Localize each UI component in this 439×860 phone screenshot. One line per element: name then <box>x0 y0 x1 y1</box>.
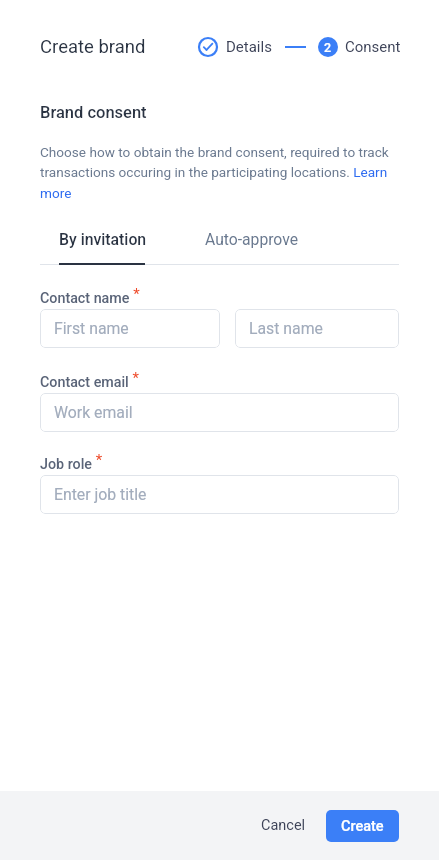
staticText: Auto-approve <box>205 230 299 248</box>
button[interactable]: Last name <box>235 309 399 348</box>
staticText: 2 <box>324 40 332 55</box>
staticText: By invitation <box>59 230 147 249</box>
button[interactable]: Cancel <box>251 809 316 842</box>
button[interactable]: First name <box>40 309 220 348</box>
staticText: Consent <box>345 38 401 56</box>
staticText: Work email <box>54 403 133 422</box>
button[interactable]: By invitation <box>40 222 166 265</box>
staticText: Contact email * <box>40 369 139 391</box>
staticText: First name <box>54 319 129 338</box>
staticText: Create brand <box>40 36 146 58</box>
button[interactable]: Create <box>326 810 399 842</box>
staticText: Contact name * <box>40 285 140 307</box>
staticText: Cancel <box>261 817 306 834</box>
staticText: Job role * <box>40 451 103 473</box>
staticText: Choose how to obtain the brand consent, … <box>40 144 399 202</box>
button[interactable]: Enter job title <box>40 475 399 514</box>
staticText: Details <box>226 38 272 56</box>
button[interactable]: Details step completed <box>198 37 218 57</box>
staticText: Last name <box>249 319 323 338</box>
staticText: Brand consent <box>40 103 147 122</box>
staticText: Enter job title <box>54 485 147 504</box>
button[interactable]: Auto-approve <box>186 222 318 265</box>
button[interactable]: Work email <box>40 393 399 432</box>
button[interactable]: Consent step 2 <box>318 37 338 57</box>
staticText: Create <box>341 818 384 835</box>
